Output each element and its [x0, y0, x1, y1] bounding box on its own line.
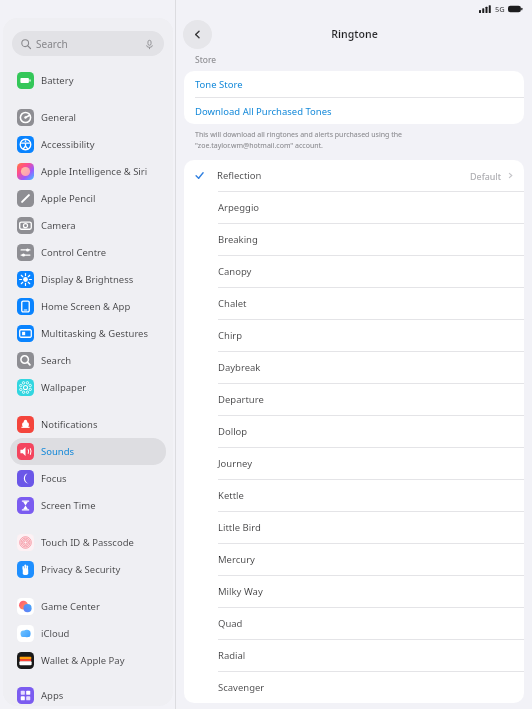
button[interactable]: Chalet	[184, 288, 524, 319]
staticText: Home Screen & App Library	[41, 300, 162, 313]
button[interactable]: Camera	[10, 212, 166, 239]
staticText: Search	[36, 37, 68, 51]
staticText: Departure	[218, 393, 264, 406]
button[interactable]: Display & Brightness	[10, 266, 166, 293]
staticText: Quad	[218, 617, 243, 630]
staticText: Display & Brightness	[41, 273, 134, 286]
button[interactable]: Back	[183, 20, 212, 49]
staticText: Milky Way	[218, 585, 263, 598]
staticText: Mercury	[218, 553, 255, 566]
staticText: Touch ID & Passcode	[41, 536, 134, 549]
button[interactable]: General	[10, 104, 166, 131]
button[interactable]: Privacy & Security	[10, 556, 166, 583]
button[interactable]: Search	[12, 31, 164, 56]
button[interactable]: Battery	[10, 67, 166, 94]
staticText: Wallpaper	[41, 381, 87, 394]
staticText: Arpeggio	[218, 201, 260, 214]
staticText: Download All Purchased Tones	[195, 105, 332, 118]
button[interactable]: Touch ID & Passcode	[10, 529, 166, 556]
staticText: Breaking	[218, 233, 258, 246]
button[interactable]: Radial	[184, 640, 524, 671]
button[interactable]: Departure	[184, 384, 524, 415]
staticText: Focus	[41, 472, 67, 485]
button[interactable]: Canopy	[184, 256, 524, 287]
staticText: Ringtone	[331, 27, 378, 41]
staticText: Chirp	[218, 329, 243, 342]
staticText: Accessibility	[41, 138, 95, 151]
button[interactable]: Daybreak	[184, 352, 524, 383]
staticText: General	[41, 111, 77, 124]
button[interactable]: Reflection	[184, 160, 524, 191]
button[interactable]: Notifications	[10, 411, 166, 438]
button[interactable]: Breaking	[184, 224, 524, 255]
staticText: Store	[195, 54, 217, 66]
button[interactable]: Sounds	[10, 438, 166, 465]
staticText: Wallet & Apple Pay	[41, 654, 125, 667]
button[interactable]: Wallet & Apple Pay	[10, 647, 166, 674]
button[interactable]: Focus	[10, 465, 166, 492]
staticText: Dollop	[218, 425, 248, 438]
button[interactable]: Dollop	[184, 416, 524, 447]
staticText: Search	[41, 354, 72, 367]
button[interactable]: Home Screen & App Library	[10, 293, 166, 320]
button[interactable]: Journey	[184, 448, 524, 479]
button[interactable]: Screen Time	[10, 492, 166, 519]
staticText: Kettle	[218, 489, 244, 502]
button[interactable]: Kettle	[184, 480, 524, 511]
staticText: This will download all ringtones and ale…	[195, 130, 402, 150]
staticText: Chalet	[218, 297, 247, 310]
staticText: Notifications	[41, 418, 98, 431]
button[interactable]: Control Centre	[10, 239, 166, 266]
staticText: Apps	[41, 689, 64, 702]
button[interactable]: Search	[10, 347, 166, 374]
button[interactable]: Tone Store	[184, 71, 524, 97]
button[interactable]: Arpeggio	[184, 192, 524, 223]
staticText: Little Bird	[218, 521, 261, 534]
button[interactable]: Chirp	[184, 320, 524, 351]
button[interactable]: Wallpaper	[10, 374, 166, 401]
button[interactable]: Multitasking & Gestures	[10, 320, 166, 347]
staticText: Default	[470, 170, 501, 182]
staticText: Game Center	[41, 600, 100, 613]
staticText: Journey	[218, 457, 253, 470]
staticText: Battery	[41, 74, 74, 87]
button[interactable]: Apple Pencil	[10, 185, 166, 212]
button[interactable]: iCloud	[10, 620, 166, 647]
staticText: Privacy & Security	[41, 563, 121, 576]
button[interactable]: Quad	[184, 608, 524, 639]
staticText: Canopy	[218, 265, 252, 278]
button[interactable]: Little Bird	[184, 512, 524, 543]
staticText: Multitasking & Gestures	[41, 327, 149, 340]
button[interactable]: Scavenger	[184, 672, 524, 703]
staticText: Apple Intelligence & Siri	[41, 165, 148, 178]
staticText: Radial	[218, 649, 246, 662]
button[interactable]: Game Center	[10, 593, 166, 620]
staticText: Scavenger	[218, 681, 265, 694]
button[interactable]: Milky Way	[184, 576, 524, 607]
staticText: Control Centre	[41, 246, 107, 259]
staticText: Camera	[41, 219, 76, 232]
staticText: Daybreak	[218, 361, 261, 374]
button[interactable]: Apple Intelligence & Siri	[10, 158, 166, 185]
staticText: 5G	[495, 4, 505, 14]
staticText: Reflection	[217, 169, 262, 182]
staticText: Tone Store	[195, 78, 243, 91]
button[interactable]: Mercury	[184, 544, 524, 575]
button[interactable]: Download All Purchased Tones	[184, 98, 524, 124]
button[interactable]: Accessibility	[10, 131, 166, 158]
staticText: Apple Pencil	[41, 192, 96, 205]
button[interactable]: Apps	[10, 684, 166, 706]
staticText: iCloud	[41, 627, 70, 640]
staticText: Screen Time	[41, 499, 96, 512]
staticText: Sounds	[41, 445, 75, 458]
